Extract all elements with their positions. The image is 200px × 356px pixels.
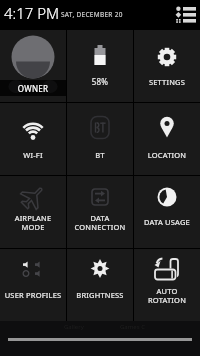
button[interactable]: WI-FI <box>0 103 66 175</box>
button[interactable]: SETTINGS <box>134 30 200 102</box>
staticText: USER PROFILES <box>0 290 66 300</box>
staticText: Games C <box>120 323 145 331</box>
button[interactable]: DATA USAGE <box>134 176 200 248</box>
staticText: DATA CONNECTION <box>67 213 133 232</box>
staticText: SAT, DECEMBER 20 <box>61 10 123 19</box>
staticText: AIRPLANE MODE <box>0 213 66 232</box>
staticText: OWNER <box>0 83 66 94</box>
button[interactable]: USER PROFILES <box>0 249 66 321</box>
staticText: BRIGHTNESS <box>67 290 133 300</box>
button[interactable]: 58% <box>67 30 133 102</box>
button[interactable] <box>174 0 200 30</box>
button[interactable]: BT <box>67 103 133 175</box>
button[interactable]: AIRPLANE MODE <box>0 176 66 248</box>
button[interactable]: AUTO ROTATION <box>134 249 200 321</box>
button[interactable]: BRIGHTNESS <box>67 249 133 321</box>
staticText: WI-FI <box>0 150 66 160</box>
staticText: LOCATION <box>134 150 200 160</box>
button[interactable]: LOCATION <box>134 103 200 175</box>
staticText: 58% <box>67 76 133 87</box>
staticText: SETTINGS <box>134 77 200 87</box>
staticText: BT <box>67 150 133 160</box>
staticText: 4:17 PM <box>4 3 60 23</box>
staticText: DATA USAGE <box>134 217 200 227</box>
button[interactable]: OWNER <box>0 30 66 102</box>
button[interactable]: DATA CONNECTION <box>67 176 133 248</box>
staticText: AUTO ROTATION <box>134 286 200 305</box>
